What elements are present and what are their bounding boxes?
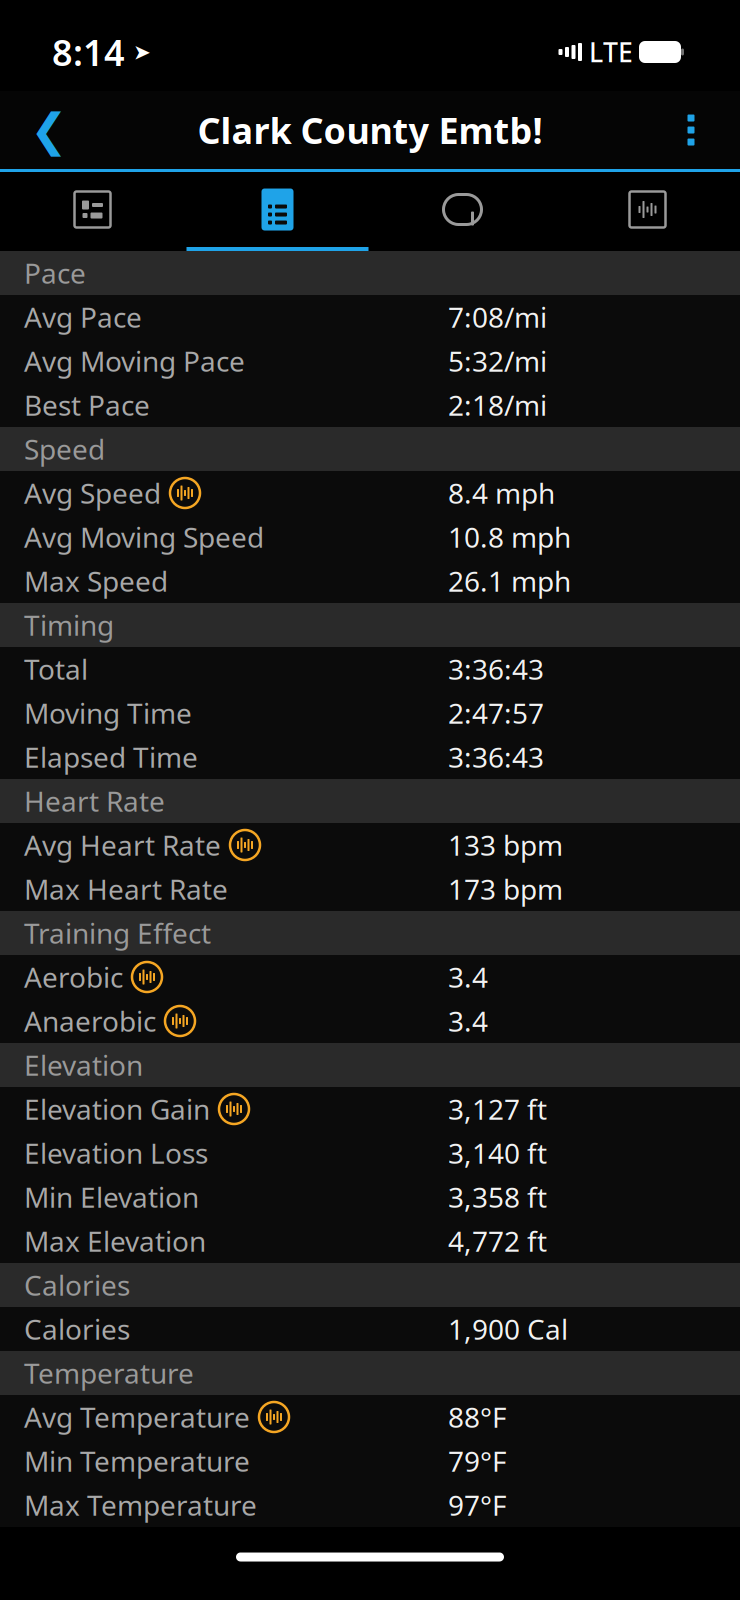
staticText: 3:36:43 [448,738,544,776]
staticText: Avg Speed [24,474,161,512]
staticText: Best Pace [24,386,150,424]
button[interactable]: Elapsed Time [0,735,740,779]
staticText: Aerobic [24,958,123,996]
staticText: Avg Temperature [24,1398,250,1436]
staticText: LTE [589,34,633,70]
button[interactable]: Map [0,172,185,251]
staticText: Clark County Emtb! [197,106,542,154]
staticText: Anaerobic [24,1002,156,1040]
staticText: 2:18/mi [448,386,547,424]
staticText: Avg Moving Pace [24,342,245,380]
button[interactable]: Avg Heart Rate [0,823,740,867]
staticText: 1,900 Cal [448,1310,568,1348]
button[interactable]: Total [0,647,740,691]
staticText: Avg Moving Speed [24,518,264,556]
button[interactable]: More options [656,95,726,165]
staticText: Elevation Gain [24,1090,210,1128]
staticText: Elevation Loss [24,1134,208,1172]
button[interactable]: Min Temperature [0,1439,740,1483]
button[interactable]: Details [185,172,370,251]
staticText: Calories [24,1310,130,1348]
staticText: Elapsed Time [24,738,198,776]
staticText: Min Temperature [24,1442,250,1480]
staticText: ❮ [30,104,68,156]
staticText: Max Elevation [24,1222,206,1260]
staticText: Max Heart Rate [24,870,228,908]
staticText: Pace [24,254,86,292]
button[interactable]: Min Elevation [0,1175,740,1219]
staticText: Training Effect [24,914,211,952]
staticText: 3,358 ft [448,1178,547,1216]
staticText: Timing [24,606,114,644]
button[interactable]: Max Heart Rate [0,867,740,911]
staticText: Max Speed [24,562,168,600]
staticText: 8:14 [52,28,125,76]
button[interactable]: Best Pace [0,383,740,427]
button[interactable]: Avg Temperature [0,1395,740,1439]
staticText: 79°F [448,1442,507,1480]
staticText: Calories [24,1266,130,1304]
button[interactable]: Max Speed [0,559,740,603]
button[interactable]: Elevation Loss [0,1131,740,1175]
staticText: 5:32/mi [448,342,547,380]
staticText: 3,140 ft [448,1134,547,1172]
button[interactable]: Laps [370,172,555,251]
staticText: 10.8 mph [448,518,571,556]
staticText: 2:47:57 [448,694,544,732]
staticText: Heart Rate [24,782,165,820]
staticText: 133 bpm [448,826,563,864]
staticText: Avg Pace [24,298,142,336]
button[interactable]: Moving Time [0,691,740,735]
staticText: 3:36:43 [448,650,544,688]
staticText: Min Elevation [24,1178,199,1216]
staticText: Temperature [24,1354,194,1392]
staticText: Speed [24,430,105,468]
button[interactable]: Avg Pace [0,295,740,339]
button[interactable]: Max Temperature [0,1483,740,1527]
staticText: Elevation [24,1046,143,1084]
staticText: Avg Heart Rate [24,826,221,864]
staticText: 3.4 [448,958,488,996]
staticText: 7:08/mi [448,298,547,336]
button[interactable]: Calories [0,1307,740,1351]
button[interactable]: Avg Moving Pace [0,339,740,383]
button[interactable]: Anaerobic [0,999,740,1043]
staticText: 97°F [448,1486,507,1524]
staticText: 3.4 [448,1002,488,1040]
staticText: Max Temperature [24,1486,257,1524]
button[interactable]: Elevation Gain [0,1087,740,1131]
button[interactable]: Max Elevation [0,1219,740,1263]
button[interactable]: Aerobic [0,955,740,999]
staticText: Total [24,650,88,688]
staticText: 88°F [448,1398,507,1436]
button[interactable]: Avg Moving Speed [0,515,740,559]
button[interactable]: Avg Speed [0,471,740,515]
button[interactable]: Back [14,95,84,165]
staticText: 3,127 ft [448,1090,547,1128]
staticText: 26.1 mph [448,562,571,600]
button[interactable]: Charts [555,172,740,251]
staticText: ➤ [133,40,151,64]
staticText: 4,772 ft [448,1222,547,1260]
staticText: 173 bpm [448,870,563,908]
staticText: Moving Time [24,694,192,732]
staticText: 8.4 mph [448,474,555,512]
